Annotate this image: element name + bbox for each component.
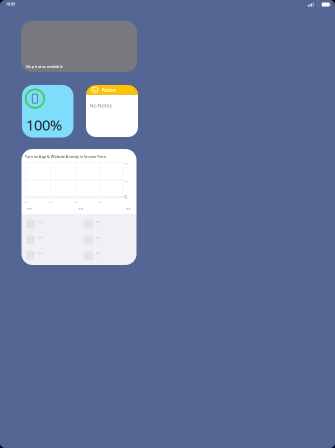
button[interactable]: No photos available (21, 21, 137, 72)
button[interactable]: 100% (22, 85, 73, 137)
staticText: No Notes (90, 102, 113, 109)
staticText: 4G (316, 2, 319, 7)
button[interactable]: Notes (86, 85, 138, 137)
button[interactable]: Turn on App & Website Activity in Screen… (21, 149, 136, 265)
staticText: 0 (124, 193, 127, 200)
staticText: 18 (98, 197, 102, 205)
staticText: 60m (124, 159, 128, 166)
staticText: Notes (102, 86, 117, 93)
staticText: No photos available (26, 64, 63, 69)
staticText: 06 (49, 197, 53, 205)
staticText: 12 (74, 197, 78, 205)
staticText: 00 (24, 197, 28, 205)
staticText: 10:09 (6, 1, 15, 6)
staticText: 30m (124, 176, 128, 183)
staticText: 100% (26, 115, 62, 134)
staticText: Turn on App & Website Activity in Screen… (25, 154, 107, 159)
